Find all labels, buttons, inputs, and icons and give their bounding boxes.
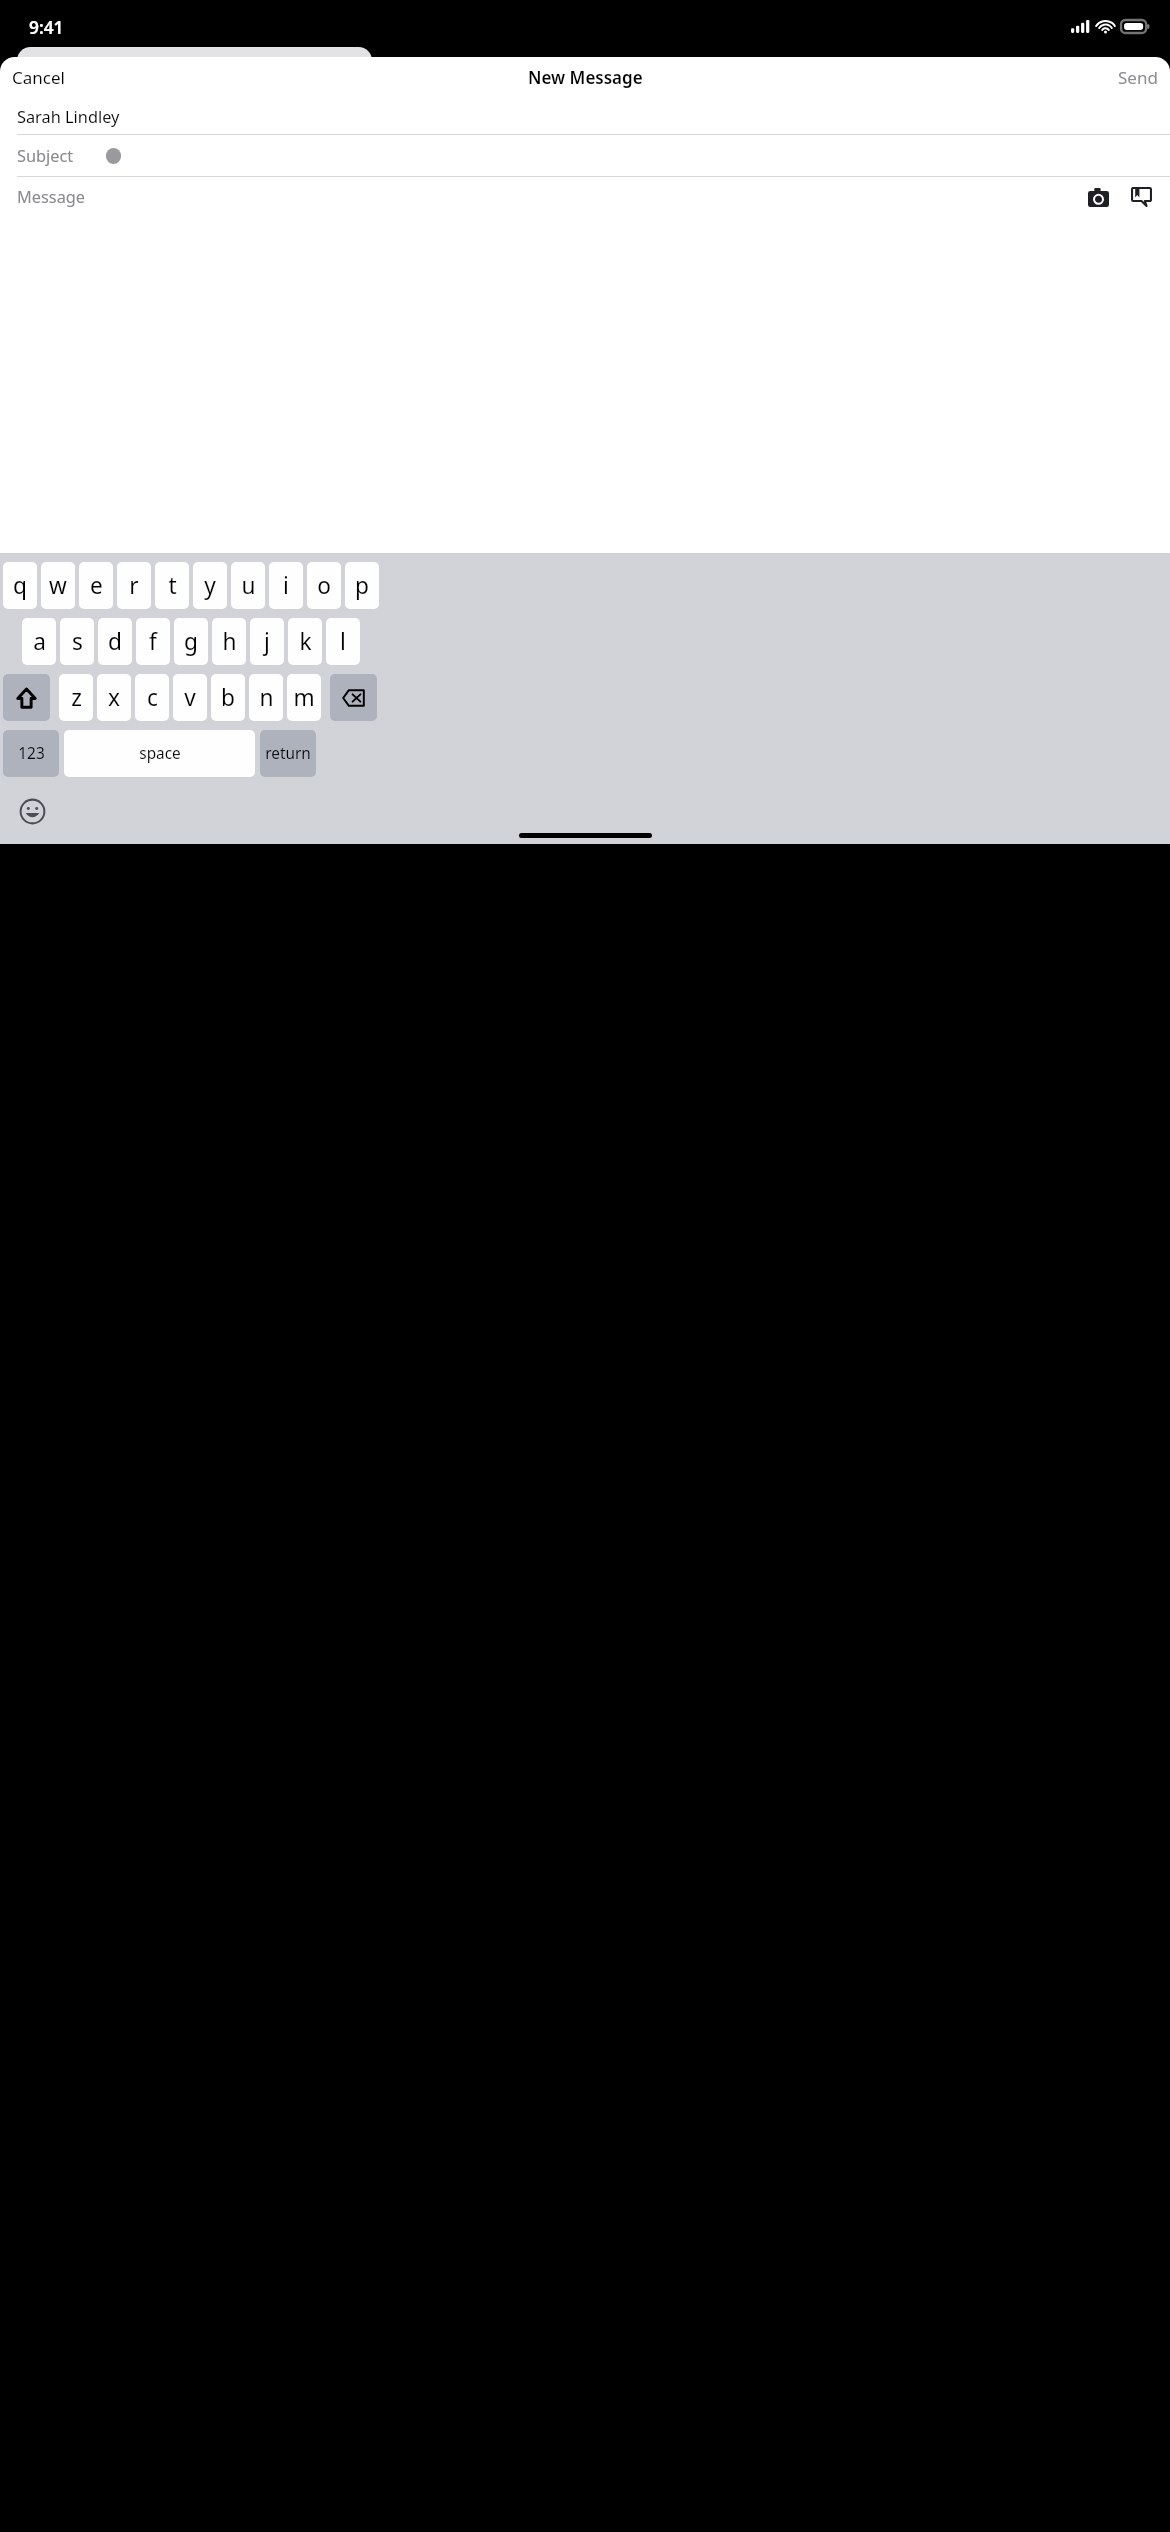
staticText: l [340, 626, 346, 657]
staticText: r [129, 570, 139, 601]
button[interactable]: 123 [3, 730, 59, 777]
button[interactable]: h [212, 618, 246, 665]
button[interactable]: k [288, 618, 322, 665]
staticText: q [13, 570, 27, 601]
staticText: Send [1118, 66, 1158, 89]
button[interactable]: Emoji [16, 795, 49, 828]
button[interactable]: Apps [1128, 184, 1155, 210]
staticText: s [72, 626, 83, 657]
other: Shift [16, 687, 37, 709]
staticText: Subject [17, 145, 74, 167]
button[interactable]: space [64, 730, 255, 777]
staticText: i [283, 570, 289, 601]
staticText: h [222, 626, 237, 657]
button[interactable]: o [307, 562, 341, 609]
button[interactable]: Sarah Lindley [0, 98, 1170, 135]
staticText: u [241, 570, 256, 601]
staticText: v [184, 682, 196, 713]
button[interactable]: Camera [1085, 185, 1112, 210]
button[interactable]: t [155, 562, 189, 609]
staticText: Sarah Lindley [17, 106, 120, 128]
button[interactable]: x [97, 674, 131, 721]
staticText: k [299, 626, 312, 657]
other: Delete [342, 689, 365, 707]
button[interactable]: d [98, 618, 132, 665]
staticText: space [139, 743, 181, 764]
staticText: c [147, 682, 158, 713]
staticText: y [204, 570, 216, 601]
button[interactable]: u [231, 562, 265, 609]
staticText: x [108, 682, 120, 713]
button[interactable]: a [22, 618, 56, 665]
staticText: t [168, 570, 177, 601]
button[interactable]: l [326, 618, 360, 665]
staticText: z [71, 682, 82, 713]
button[interactable]: p [345, 562, 379, 609]
staticText: m [293, 682, 315, 713]
button[interactable]: return [260, 730, 316, 777]
staticText: d [108, 626, 122, 657]
staticText: b [221, 682, 235, 713]
button[interactable]: w [41, 562, 75, 609]
staticText: New Message [528, 66, 643, 89]
button[interactable]: Subject [0, 135, 1170, 177]
staticText: o [317, 570, 331, 601]
button[interactable]: c [135, 674, 169, 721]
staticText: Cancel [12, 66, 65, 89]
button[interactable]: i [269, 562, 303, 609]
button[interactable]: s [60, 618, 94, 665]
staticText: w [49, 570, 67, 601]
button[interactable]: n [249, 674, 283, 721]
button[interactable]: e [79, 562, 113, 609]
staticText: f [149, 626, 157, 657]
button[interactable]: b [211, 674, 245, 721]
staticText: n [259, 682, 274, 713]
staticText: a [33, 626, 46, 657]
button[interactable]: Delete [330, 674, 377, 721]
staticText: g [184, 626, 198, 657]
staticText: 123 [18, 743, 45, 764]
button[interactable]: r [117, 562, 151, 609]
button[interactable]: y [193, 562, 227, 609]
button[interactable]: q [3, 562, 37, 609]
button[interactable]: f [136, 618, 170, 665]
button[interactable]: v [173, 674, 207, 721]
button[interactable]: j [250, 618, 284, 665]
button[interactable]: Shift [3, 674, 50, 721]
staticText: Message [17, 186, 86, 208]
staticText: return [265, 743, 311, 764]
staticText: j [264, 626, 270, 657]
button[interactable]: g [174, 618, 208, 665]
staticText: p [355, 570, 369, 601]
button[interactable]: Cancel [7, 61, 70, 94]
button[interactable]: z [59, 674, 93, 721]
button[interactable]: Send [1113, 61, 1163, 94]
button[interactable]: m [287, 674, 321, 721]
staticText: e [90, 570, 103, 601]
staticText: 9:41 [29, 15, 64, 39]
